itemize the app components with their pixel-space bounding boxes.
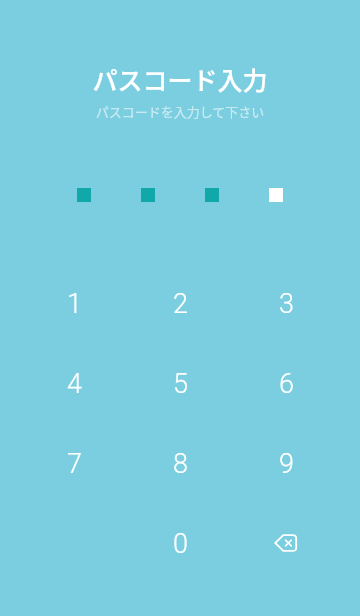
- staticText: 4: [67, 368, 82, 400]
- button[interactable]: 5: [127, 344, 233, 424]
- staticText: 6: [279, 368, 294, 400]
- staticText: 8: [173, 448, 188, 480]
- button[interactable]: 1: [21, 264, 127, 344]
- staticText: パスコード入力: [0, 61, 360, 97]
- button[interactable]: 6: [233, 344, 339, 424]
- button[interactable]: 0: [127, 504, 233, 584]
- staticText: 5: [173, 368, 188, 400]
- button[interactable]: 3: [233, 264, 339, 344]
- button[interactable]: 4: [21, 344, 127, 424]
- staticText: 1: [67, 288, 82, 320]
- button[interactable]: 7: [21, 424, 127, 504]
- button[interactable]: 8: [127, 424, 233, 504]
- button[interactable]: 2: [127, 264, 233, 344]
- staticText: 2: [173, 288, 188, 320]
- staticText: 9: [279, 448, 294, 480]
- button[interactable]: Backspace: [233, 504, 339, 584]
- staticText: 0: [173, 528, 188, 560]
- staticText: 7: [67, 448, 82, 480]
- other: Backspace: [274, 534, 298, 554]
- staticText: 3: [279, 288, 294, 320]
- staticText: パスコードを入力して下さい: [0, 102, 360, 121]
- button[interactable]: 9: [233, 424, 339, 504]
